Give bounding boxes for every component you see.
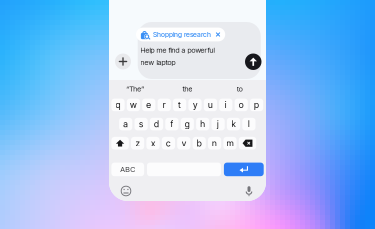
staticText: h xyxy=(200,119,205,129)
button[interactable]: b xyxy=(193,137,206,149)
button[interactable]: g xyxy=(181,118,194,130)
staticText: u xyxy=(208,100,213,110)
staticText: m xyxy=(226,138,233,148)
staticText: w xyxy=(130,100,137,110)
staticText: ABC xyxy=(120,165,135,174)
staticText: n xyxy=(212,138,217,148)
staticText: Shopping research xyxy=(153,30,211,39)
button[interactable]: to xyxy=(214,81,266,97)
staticText: b xyxy=(197,138,202,148)
staticText: s xyxy=(139,119,143,129)
button[interactable]: z xyxy=(131,137,144,149)
button[interactable]: q xyxy=(111,99,125,111)
staticText: e xyxy=(146,100,151,110)
button[interactable]: p xyxy=(250,99,263,111)
button[interactable]: Send message xyxy=(245,53,261,70)
staticText: Help me find a powerful xyxy=(140,46,214,54)
button[interactable]: r xyxy=(158,99,171,111)
button[interactable]: i xyxy=(219,99,232,111)
button[interactable]: u xyxy=(204,99,217,111)
staticText: to xyxy=(237,85,243,93)
staticText: d xyxy=(154,119,159,129)
staticText: i xyxy=(225,100,227,110)
staticText: k xyxy=(231,119,235,129)
button[interactable]: Dictation xyxy=(241,183,257,199)
staticText: l xyxy=(248,119,250,129)
button[interactable]: Delete xyxy=(239,137,256,149)
button[interactable]: v xyxy=(177,137,190,149)
button[interactable]: x xyxy=(146,137,160,149)
button[interactable]: j xyxy=(211,118,225,130)
staticText: v xyxy=(182,138,186,148)
button[interactable]: n xyxy=(208,137,221,149)
button[interactable]: w xyxy=(127,99,140,111)
staticText: g xyxy=(185,119,190,129)
button[interactable]: c xyxy=(162,137,175,149)
button[interactable]: f xyxy=(165,118,178,130)
button[interactable]: l xyxy=(242,118,255,130)
button[interactable]: Add attachment xyxy=(115,53,131,69)
button[interactable]: s xyxy=(134,118,148,130)
staticText: a xyxy=(123,119,128,129)
staticText: j xyxy=(217,119,219,129)
button[interactable]: y xyxy=(188,99,202,111)
button[interactable]: d xyxy=(150,118,163,130)
staticText: p xyxy=(254,100,259,110)
button[interactable]: “The” xyxy=(109,81,161,97)
button[interactable]: Shopping research xyxy=(136,28,225,41)
button[interactable]: o xyxy=(235,99,248,111)
staticText: x xyxy=(151,138,155,148)
staticText: “The” xyxy=(126,85,144,93)
staticText: o xyxy=(239,100,244,110)
staticText: f xyxy=(170,119,173,129)
button[interactable]: k xyxy=(227,118,240,130)
button[interactable]: t xyxy=(173,99,186,111)
staticText: new laptop xyxy=(140,58,175,67)
button[interactable]: Shift xyxy=(111,137,129,149)
staticText: c xyxy=(166,138,171,148)
staticText: the xyxy=(182,85,192,93)
staticText: r xyxy=(163,100,166,110)
button[interactable]: m xyxy=(223,137,237,149)
staticText: q xyxy=(115,100,120,110)
staticText: z xyxy=(136,138,140,148)
button[interactable]: the xyxy=(161,81,214,97)
staticText: y xyxy=(193,100,197,110)
button[interactable]: ABC xyxy=(111,163,144,176)
button[interactable]: Emoji keyboard xyxy=(118,183,134,199)
button[interactable]: Return xyxy=(224,163,264,176)
button[interactable]: h xyxy=(196,118,209,130)
button[interactable]: a xyxy=(119,118,132,130)
staticText: t xyxy=(178,100,181,110)
button[interactable]: e xyxy=(142,99,155,111)
